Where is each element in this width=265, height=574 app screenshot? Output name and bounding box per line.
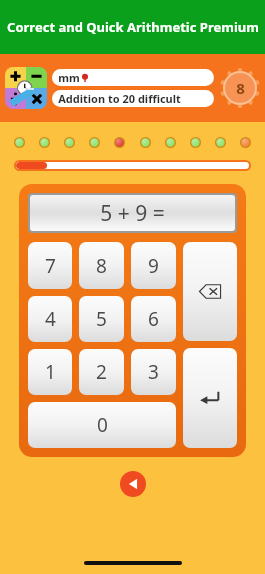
button[interactable]: 0 — [28, 402, 176, 448]
staticText: Correct and Quick Arithmetic Premium — [7, 18, 259, 36]
button[interactable]: Timer — [220, 68, 260, 108]
staticText: 1 — [45, 359, 56, 385]
staticText: 6 — [148, 306, 159, 332]
staticText: 7 — [45, 253, 56, 279]
button[interactable]: Back — [120, 471, 146, 497]
staticText: 4 — [45, 306, 56, 332]
staticText: Addition to 20 difficult — [58, 91, 181, 106]
button[interactable]: 2 — [79, 349, 124, 395]
button[interactable]: 8 — [79, 242, 124, 289]
staticText: 8 — [236, 78, 245, 98]
button[interactable]: Addition to 20 difficult — [52, 90, 214, 107]
staticText: 8 — [96, 253, 107, 279]
button[interactable]: 1 — [28, 349, 72, 395]
button[interactable]: 3 — [131, 349, 176, 395]
staticText: 2 — [96, 359, 107, 385]
button[interactable]: 9 — [131, 242, 176, 289]
button[interactable]: 7 — [28, 242, 72, 289]
button[interactable]: Backspace — [183, 242, 237, 341]
staticText: 3 — [148, 359, 159, 385]
button[interactable]: 6 — [131, 296, 176, 342]
staticText: 5 — [96, 306, 107, 332]
button[interactable]: 5 — [79, 296, 124, 342]
button[interactable]: Enter — [183, 348, 237, 448]
staticText: 9 — [148, 253, 159, 279]
staticText: 0 — [97, 412, 108, 438]
staticText: 5 + 9 = — [100, 199, 165, 228]
button[interactable]: mm — [52, 69, 214, 86]
button[interactable]: App icon — [5, 67, 47, 109]
staticText: Premium — [18, 86, 34, 91]
button[interactable]: 4 — [28, 296, 72, 342]
staticText: mm — [58, 70, 80, 85]
